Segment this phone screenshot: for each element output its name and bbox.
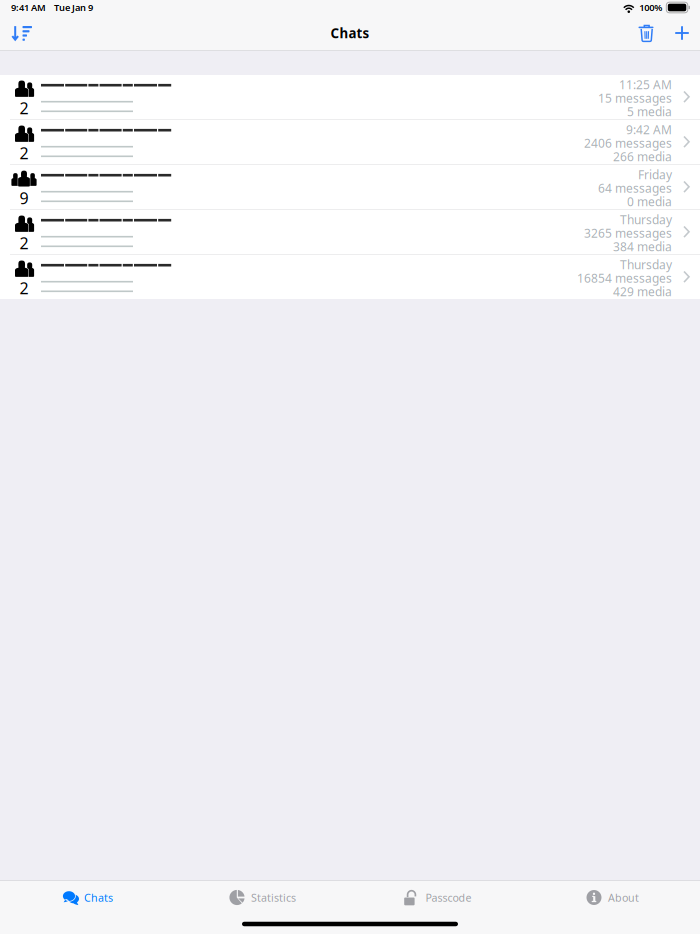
staticText: Chats [330, 24, 369, 42]
button[interactable]: Statistics [175, 881, 350, 914]
staticText: 9:41 AM [11, 1, 46, 14]
button[interactable]: 2 [0, 120, 700, 164]
button[interactable]: Passcode [350, 881, 525, 914]
staticText: Friday [638, 166, 672, 182]
button[interactable]: 9 [0, 165, 700, 209]
staticText: Tue Jan 9 [54, 1, 93, 14]
staticText: About [608, 890, 639, 905]
button[interactable]: Delete [628, 15, 664, 51]
staticText: 429 media [613, 283, 672, 299]
staticText: Statistics [251, 890, 296, 905]
staticText: 266 media [613, 148, 672, 164]
staticText: Thursday [620, 211, 672, 227]
staticText: 2 [19, 142, 28, 164]
staticText: 9:42 AM [626, 121, 672, 137]
staticText: Thursday [620, 256, 672, 272]
button[interactable]: Sort [0, 15, 44, 51]
staticText: 15 messages [598, 90, 672, 106]
staticText: 100% [639, 1, 662, 14]
staticText: 9 [19, 187, 28, 209]
button[interactable]: New chat [664, 15, 700, 51]
staticText: 2 [19, 97, 28, 119]
staticText: 384 media [613, 238, 672, 254]
staticText: 3265 messages [584, 225, 672, 241]
staticText: 2 [19, 232, 28, 254]
staticText: 64 messages [598, 180, 672, 196]
staticText: 2 [19, 277, 28, 299]
staticText: Chats [84, 890, 113, 905]
staticText: 5 media [627, 103, 672, 119]
button[interactable]: Chats [0, 881, 175, 914]
staticText: 0 media [627, 193, 672, 209]
button[interactable]: 2 [0, 75, 700, 119]
button[interactable]: About [525, 881, 700, 914]
staticText: 2406 messages [584, 135, 672, 151]
button[interactable]: 2 [0, 255, 700, 299]
staticText: 16854 messages [577, 270, 672, 286]
staticText: Passcode [425, 890, 471, 905]
staticText: 11:25 AM [619, 76, 672, 92]
button[interactable]: 2 [0, 210, 700, 254]
